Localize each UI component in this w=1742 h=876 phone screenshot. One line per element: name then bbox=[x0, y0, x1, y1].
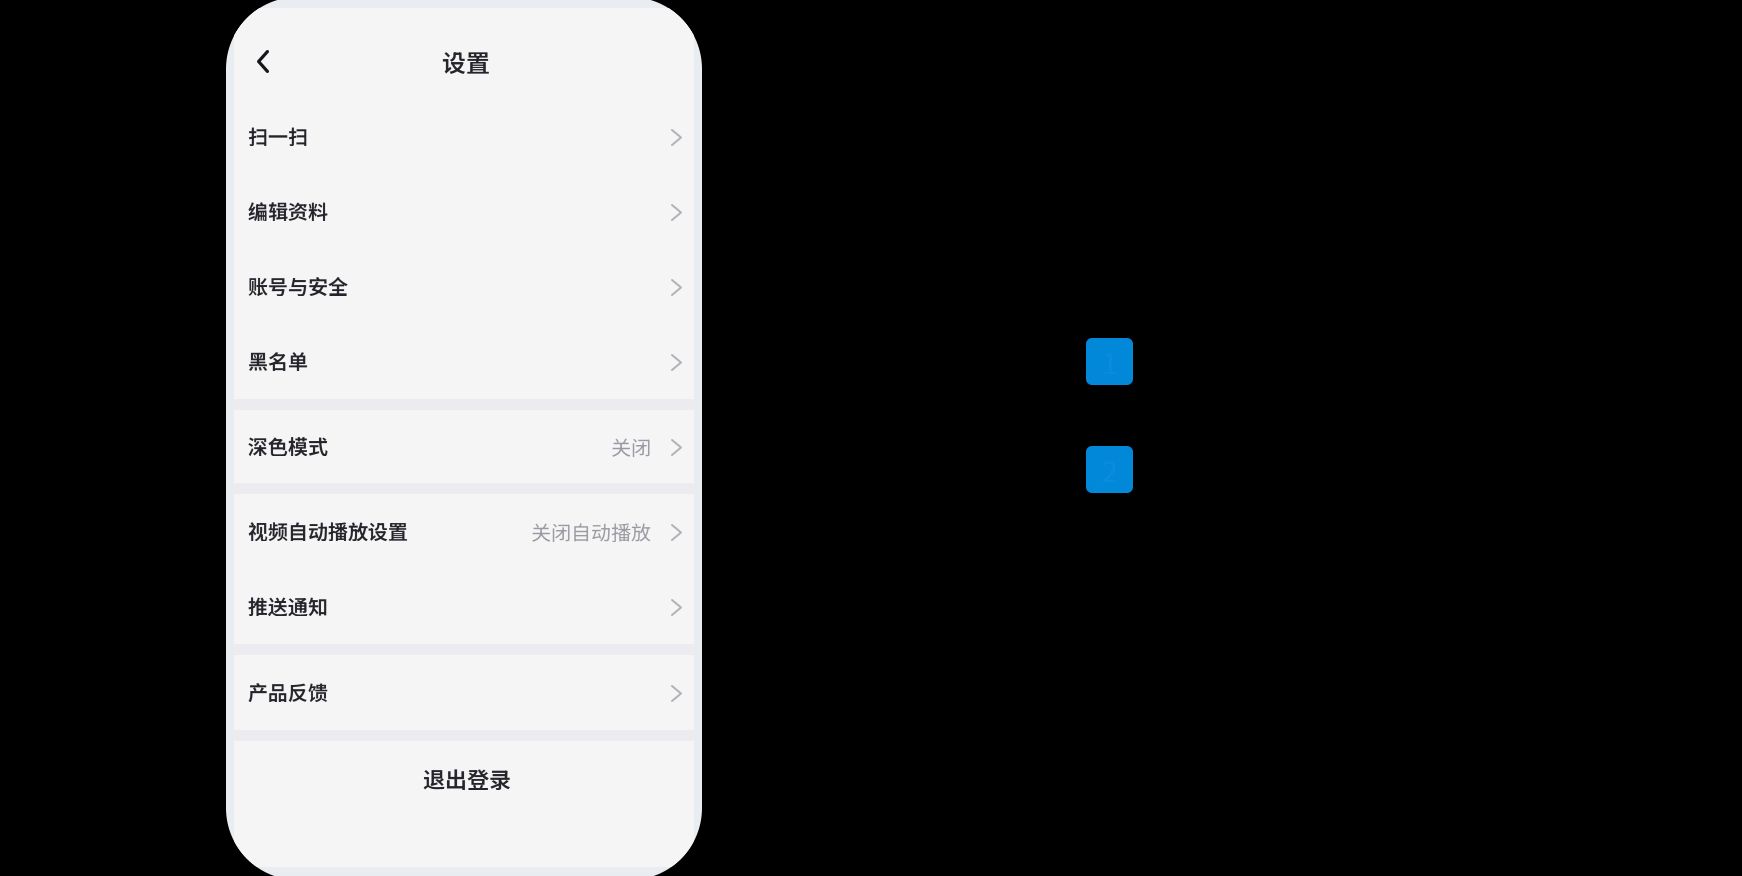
button[interactable]: 扫一扫 bbox=[234, 99, 694, 174]
staticText: 设置 bbox=[442, 44, 490, 79]
staticText: 账号与安全 bbox=[248, 271, 348, 300]
staticText: 推送通知 bbox=[248, 591, 328, 620]
button[interactable]: Back bbox=[234, 37, 285, 86]
staticText: 退出登录 bbox=[423, 763, 511, 794]
button[interactable]: 黑名单 bbox=[234, 324, 694, 399]
button[interactable]: 推送通知 bbox=[234, 569, 694, 644]
button[interactable]: 账号与安全 bbox=[234, 249, 694, 324]
button[interactable]: Item 1 bbox=[1086, 338, 1133, 385]
button[interactable]: 深色模式 bbox=[234, 410, 694, 483]
staticText: 扫一扫 bbox=[248, 121, 308, 150]
staticText: 产品反馈 bbox=[248, 677, 328, 706]
staticText: 黑名单 bbox=[248, 346, 308, 375]
staticText: 关闭 bbox=[611, 432, 651, 461]
button[interactable]: 退出登录 bbox=[234, 741, 694, 816]
button[interactable]: Item 2 bbox=[1086, 446, 1133, 493]
button[interactable]: 视频自动播放设置 bbox=[234, 494, 694, 569]
button[interactable]: 编辑资料 bbox=[234, 174, 694, 249]
staticText: 关闭自动播放 bbox=[531, 517, 651, 546]
staticText: 编辑资料 bbox=[248, 196, 328, 225]
staticText: 深色模式 bbox=[248, 431, 328, 460]
button[interactable]: 产品反馈 bbox=[234, 655, 694, 730]
staticText: 视频自动播放设置 bbox=[248, 516, 408, 545]
